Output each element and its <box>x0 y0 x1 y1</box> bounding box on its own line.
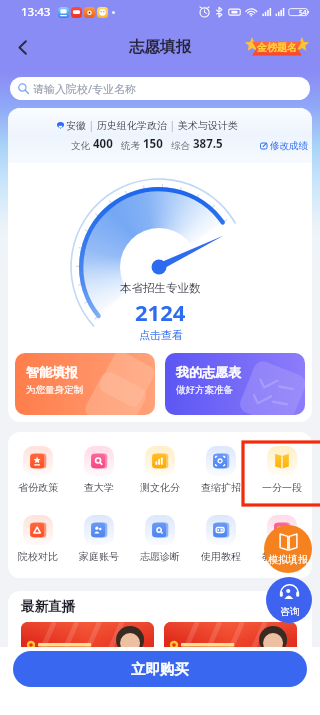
button[interactable] <box>164 622 297 681</box>
staticText: 志愿填报 <box>129 37 191 57</box>
staticText: 请输入院校/专业名称 <box>33 81 137 96</box>
button[interactable]: 安徽 <box>8 108 312 163</box>
button[interactable]: 金榜题名 <box>247 37 307 56</box>
staticText: 387.5 <box>193 136 223 152</box>
button[interactable]: 志愿诊断 <box>129 515 190 563</box>
button[interactable]: 教育头条 <box>251 515 312 563</box>
staticText: 使用教程 <box>201 550 241 563</box>
button[interactable]: 立即购买 <box>13 651 307 687</box>
button[interactable]: 院校对比 <box>8 515 68 563</box>
staticText: 54 <box>299 8 307 17</box>
staticText: 综合 <box>171 139 193 152</box>
staticText: 2124 <box>135 297 186 327</box>
staticText: 测文化分 <box>140 481 180 494</box>
staticText: 金榜题名 <box>257 41 297 54</box>
staticText: 省份政策 <box>18 481 58 494</box>
staticText: 统考 <box>121 139 143 152</box>
staticText: 为您量身定制 <box>26 384 83 396</box>
button[interactable]: 我的志愿表 <box>165 353 305 415</box>
staticText: 查缩扩招 <box>201 481 241 494</box>
staticText: 历史组化学政治 <box>97 119 167 132</box>
staticText: 查大学 <box>84 481 114 494</box>
button[interactable]: 家庭账号 <box>68 515 129 563</box>
staticText: 智能填报 <box>26 364 78 380</box>
staticText: 13:43 <box>21 4 51 20</box>
staticText: 400 <box>93 136 113 152</box>
button[interactable]: 修改成绩 <box>260 140 308 152</box>
staticText: 院校对比 <box>18 550 58 563</box>
staticText: 文化 <box>71 139 93 152</box>
staticText: 志愿诊断 <box>140 550 180 563</box>
staticText: 安徽 <box>66 119 86 132</box>
staticText: 模拟填报 <box>268 553 308 566</box>
button[interactable]: 省份政策 <box>8 446 68 494</box>
staticText: 一分一段 <box>262 481 302 494</box>
staticText: | <box>86 118 97 132</box>
staticText: | <box>167 118 178 132</box>
button[interactable]: 模拟填报 <box>264 525 312 573</box>
staticText: 修改成绩 <box>270 140 308 152</box>
staticText: 家庭账号 <box>79 550 119 563</box>
button[interactable]: 咨询 <box>266 577 312 623</box>
button[interactable] <box>21 622 154 681</box>
staticText: 最新直播 <box>21 598 75 615</box>
button[interactable]: 查缩扩招 <box>190 446 251 494</box>
button[interactable]: 测文化分 <box>129 446 190 494</box>
button[interactable]: Back <box>6 31 38 63</box>
staticText: 美术与设计类 <box>178 119 238 132</box>
button[interactable]: 请输入院校/专业名称 <box>18 77 310 100</box>
button[interactable]: 本省招生专业数 <box>120 281 201 342</box>
staticText: 咨询 <box>280 605 300 618</box>
staticText: 立即购买 <box>131 660 189 678</box>
button[interactable]: 查大学 <box>68 446 129 494</box>
staticText: 本省招生专业数 <box>120 281 201 295</box>
button[interactable]: 一分一段 <box>251 446 312 494</box>
button[interactable]: 使用教程 <box>190 515 251 563</box>
staticText: 我的志愿表 <box>176 364 241 380</box>
button[interactable]: 智能填报 <box>15 353 155 415</box>
staticText: 做好方案准备 <box>176 384 233 396</box>
staticText: 150 <box>143 136 163 152</box>
staticText: 教育头条 <box>262 550 302 563</box>
staticText: 点击查看 <box>139 328 183 342</box>
